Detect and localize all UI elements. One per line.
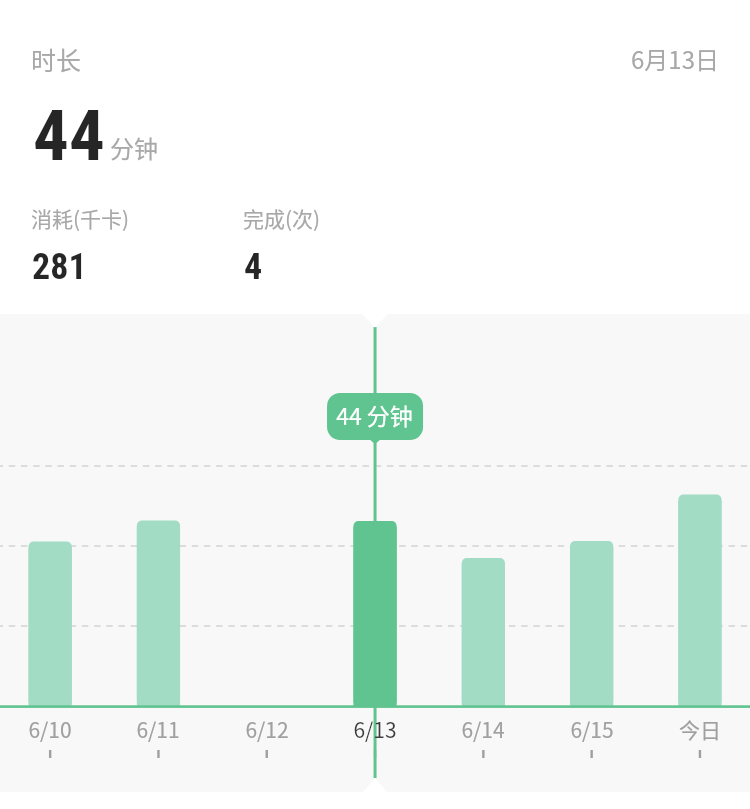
staticText: 今日 [679,714,721,744]
staticText: 281 [32,246,87,288]
button[interactable]: 6/14 [429,708,537,750]
button[interactable]: 6/10 [0,708,104,750]
staticText: 6/15 [570,714,614,744]
staticText: 44 分钟 [336,398,413,431]
staticText: 6/12 [245,714,289,744]
button[interactable]: 6/11 [104,708,212,750]
staticText: 消耗(千卡) [31,203,130,233]
button[interactable]: 6/13 [321,708,429,750]
button[interactable]: 6/12 [213,708,321,750]
button[interactable]: 6/15 [538,708,646,750]
staticText: 6/14 [461,714,505,744]
staticText: 44 [33,94,105,177]
staticText: 完成(次) [243,203,321,233]
staticText: 4 [244,246,263,288]
button[interactable]: 44 分钟 [326,391,422,438]
button[interactable]: 今日 [646,708,750,750]
staticText: 6/11 [136,714,180,744]
staticText: 6月13日 [631,41,719,76]
staticText: 时长 [31,41,82,77]
staticText: 6/10 [28,714,72,744]
staticText: 6/13 [353,714,397,744]
staticText: 分钟 [110,130,158,165]
